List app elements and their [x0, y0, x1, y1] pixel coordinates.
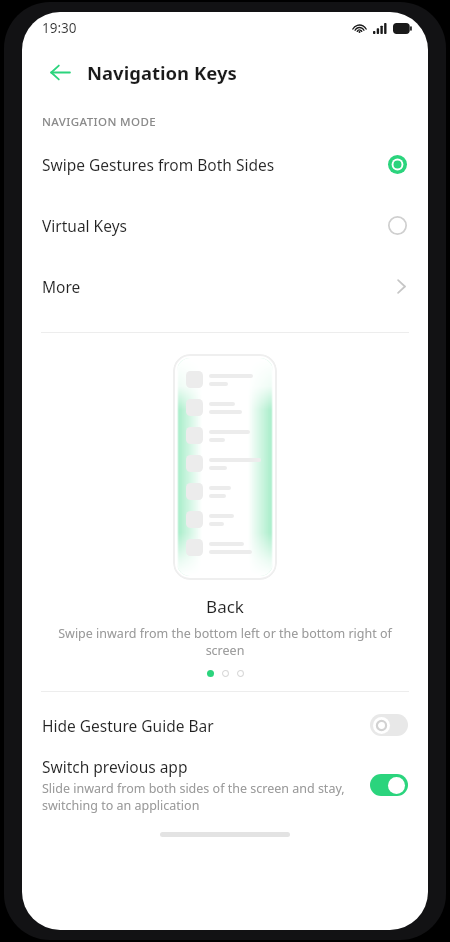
button[interactable]: Virtual Keys: [22, 195, 428, 256]
button[interactable]: Hide Gesture Guide Bar: [370, 714, 408, 736]
staticText: Back: [22, 595, 428, 618]
staticText: Hide Gesture Guide Bar: [42, 715, 214, 736]
staticText: Swipe inward from the bottom left or the…: [40, 625, 410, 659]
button[interactable]: Hide Gesture Guide Bar: [22, 692, 428, 742]
button[interactable]: Switch previous app: [370, 774, 408, 796]
button[interactable]: Swipe Gestures from Both Sides: [22, 134, 428, 195]
staticText: Switch previous app: [42, 756, 188, 777]
staticText: 19:30: [42, 19, 77, 37]
button[interactable]: More: [22, 256, 428, 317]
staticText: Slide inward from both sides of the scre…: [42, 780, 356, 814]
staticText: More: [42, 276, 397, 297]
staticText: Navigation Keys: [87, 60, 237, 85]
staticText: NAVIGATION MODE: [42, 114, 157, 130]
staticText: Virtual Keys: [42, 215, 388, 236]
button[interactable]: Switch previous app: [22, 742, 428, 820]
button[interactable]: Back: [40, 52, 80, 92]
staticText: Swipe Gestures from Both Sides: [42, 154, 388, 175]
